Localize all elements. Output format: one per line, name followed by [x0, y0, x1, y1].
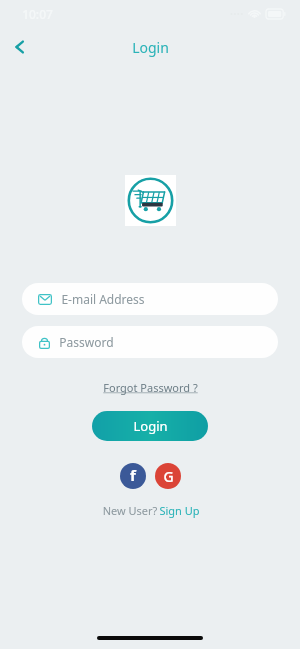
staticText: Password: [59, 334, 114, 350]
staticText: New User?: [101, 503, 159, 518]
staticText: Login: [133, 417, 168, 435]
staticText: 10:07: [22, 6, 53, 22]
staticText: Sign Up: [159, 503, 200, 518]
staticText: f: [130, 465, 136, 485]
button[interactable]: Login: [92, 411, 208, 441]
button[interactable]: New User?: [101, 503, 200, 518]
button[interactable]: Back: [0, 30, 40, 64]
staticText: Forgot Password ?: [103, 380, 198, 395]
staticText: Login: [132, 38, 169, 57]
button[interactable]: Password: [22, 326, 278, 358]
button[interactable]: Sign in with Facebook: [120, 463, 146, 489]
button[interactable]: Forgot Password ?: [99, 378, 202, 397]
staticText: E-mail Address: [61, 291, 145, 307]
staticText: G: [163, 467, 174, 486]
button[interactable]: E-mail Address: [22, 283, 278, 315]
button[interactable]: Sign in with Google: [155, 463, 181, 489]
